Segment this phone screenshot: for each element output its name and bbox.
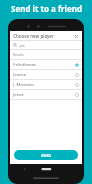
staticText: Send it to a friend (11, 3, 82, 14)
staticText: Jessica (13, 72, 26, 77)
staticText: Results (13, 53, 24, 57)
button[interactable]: Felicithonas (10, 60, 82, 69)
staticText: jes (19, 43, 25, 48)
button[interactable]: Close (73, 33, 79, 39)
button[interactable]: Jessie (10, 90, 82, 99)
staticText: Jessie (13, 92, 24, 97)
button[interactable]: J. Montano (10, 80, 82, 89)
button[interactable]: Jessica (10, 70, 82, 79)
button[interactable]: SEND (14, 150, 78, 160)
staticText: J. Montano (13, 82, 34, 87)
staticText: Felicithonas (13, 62, 36, 67)
button[interactable]: jes (13, 41, 79, 49)
staticText: Choose new player (13, 33, 54, 39)
staticText: SEND (41, 153, 51, 158)
